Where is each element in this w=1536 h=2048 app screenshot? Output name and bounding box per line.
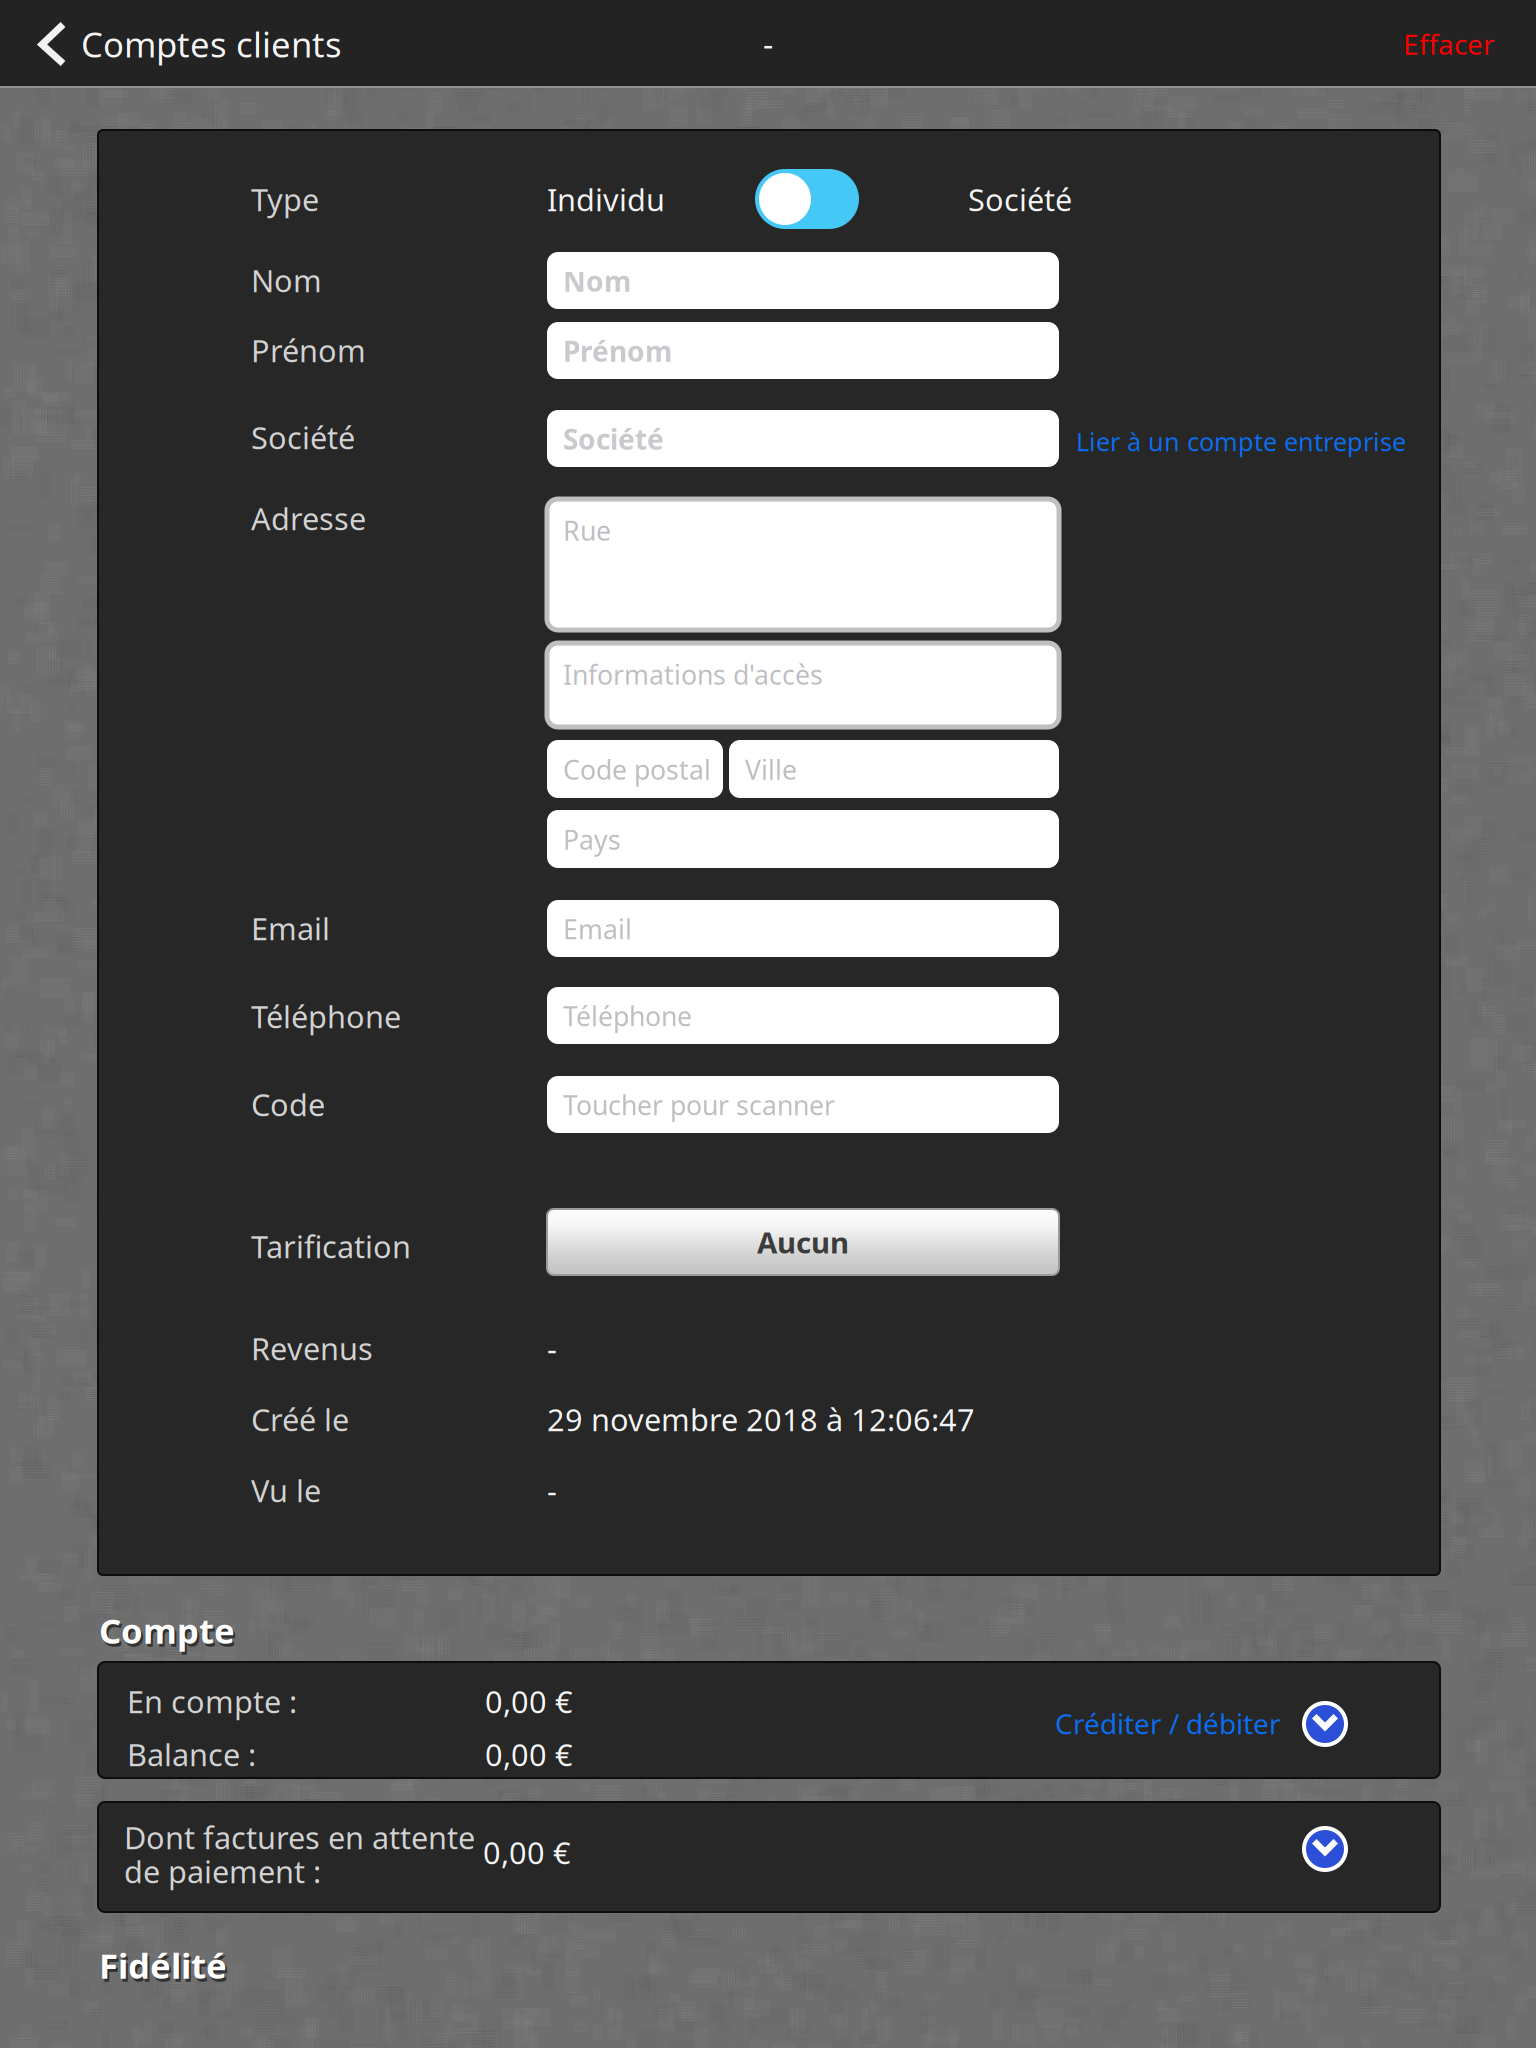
staticText: - xyxy=(763,23,773,65)
staticText: Compte xyxy=(99,1607,235,1653)
staticText: Comptes clients xyxy=(81,21,342,67)
staticText: Lier à un compte entreprise xyxy=(1076,424,1406,458)
staticText: En compte : xyxy=(127,1681,297,1722)
staticText: de paiement : xyxy=(124,1851,321,1892)
staticText: Balance : xyxy=(127,1734,256,1775)
staticText: 29 novembre 2018 à 12:06:47 xyxy=(547,1399,975,1440)
button[interactable]: Détail des factures en attente xyxy=(1302,1826,1348,1872)
staticText: Informations d'accès xyxy=(563,657,823,692)
staticText: Téléphone xyxy=(251,996,401,1037)
button[interactable]: Téléphone xyxy=(547,987,1059,1044)
button[interactable]: Informations d'accès xyxy=(547,643,1059,727)
staticText: Société xyxy=(968,179,1072,220)
button[interactable]: Code postal xyxy=(547,740,723,798)
staticText: Toucher pour scanner xyxy=(563,1087,835,1122)
staticText: Vu le xyxy=(251,1470,321,1511)
staticText: Fidélité xyxy=(99,1942,227,1988)
button[interactable]: Retour : Comptes clients xyxy=(0,0,342,88)
button[interactable]: Créditer / débiter xyxy=(1055,1705,1281,1742)
staticText: Dont factures en attente xyxy=(124,1817,475,1858)
staticText: Pays xyxy=(563,822,621,857)
staticText: Code postal xyxy=(563,752,711,787)
staticText: - xyxy=(547,1470,557,1511)
staticText: Ville xyxy=(745,752,797,787)
staticText: Prénom xyxy=(251,330,366,371)
staticText: Type xyxy=(251,179,319,220)
staticText: Société xyxy=(563,420,664,457)
button[interactable]: Aucun xyxy=(547,1209,1059,1275)
staticText: Tarification xyxy=(251,1226,411,1267)
button[interactable]: Dont factures en attente de paiement : 0… xyxy=(98,1802,1440,1912)
button[interactable]: Email xyxy=(547,900,1059,957)
staticText: Nom xyxy=(563,262,631,299)
staticText: Prénom xyxy=(563,332,672,369)
button[interactable]: Rue xyxy=(547,499,1059,630)
button[interactable]: Prénom xyxy=(547,322,1059,379)
staticText: Code xyxy=(251,1084,325,1125)
staticText: Email xyxy=(251,908,330,949)
staticText: 0,00 € xyxy=(485,1681,573,1722)
staticText: Compte xyxy=(101,1610,237,1656)
staticText: Effacer xyxy=(1403,25,1495,63)
button[interactable]: Effacer xyxy=(1403,0,1536,88)
staticText: Téléphone xyxy=(563,998,692,1033)
button[interactable]: Créditer / débiter xyxy=(1302,1701,1348,1747)
staticText: - xyxy=(547,1328,557,1369)
button[interactable]: Ville xyxy=(729,740,1059,798)
staticText: Individu xyxy=(547,179,665,220)
staticText: Créé le xyxy=(251,1399,349,1440)
staticText: Adresse xyxy=(251,498,366,539)
staticText: 0,00 € xyxy=(485,1734,573,1775)
staticText: 0,00 € xyxy=(483,1832,571,1873)
button[interactable]: Toucher pour scanner xyxy=(547,1076,1059,1133)
staticText: Rue xyxy=(563,513,611,548)
button[interactable]: Type : individu ou société xyxy=(755,169,859,229)
button[interactable]: Pays xyxy=(547,810,1059,868)
button[interactable]: En compte 0,00 €, balance 0,00 € xyxy=(98,1662,1440,1778)
staticText: Revenus xyxy=(251,1328,373,1369)
staticText: Email xyxy=(563,911,632,946)
staticText: Fidélité xyxy=(101,1945,229,1991)
staticText: Société xyxy=(251,417,355,458)
button[interactable]: Société xyxy=(547,410,1059,467)
button[interactable]: Nom xyxy=(547,252,1059,309)
button[interactable]: Lier à un compte entreprise xyxy=(1076,424,1406,458)
staticText: Aucun xyxy=(757,1222,849,1261)
staticText: Nom xyxy=(251,260,322,301)
staticText: Créditer / débiter xyxy=(1055,1705,1281,1742)
